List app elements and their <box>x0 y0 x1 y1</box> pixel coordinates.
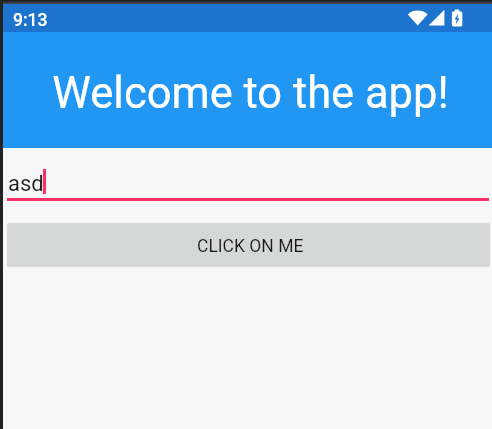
button[interactable]: Text field <box>7 158 489 201</box>
staticText: asd <box>8 171 44 197</box>
button[interactable]: CLICK ON ME <box>7 223 490 267</box>
staticText: 9:13 <box>13 10 48 31</box>
staticText: Welcome to the app! <box>52 68 449 119</box>
other: Wi-Fi, signal and battery status <box>406 8 466 28</box>
staticText: CLICK ON ME <box>197 236 304 257</box>
